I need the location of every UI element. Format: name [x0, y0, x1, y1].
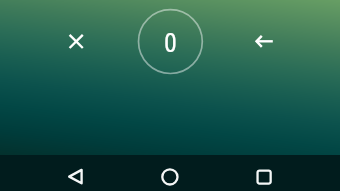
button[interactable]: Back [55, 155, 95, 191]
button[interactable]: Home [150, 155, 190, 191]
button[interactable]: 0 [138, 11, 202, 75]
button[interactable]: Back [244, 21, 284, 61]
staticText: 0 [164, 28, 177, 58]
button[interactable]: Recent apps [244, 155, 284, 191]
button[interactable]: Close [56, 21, 96, 61]
